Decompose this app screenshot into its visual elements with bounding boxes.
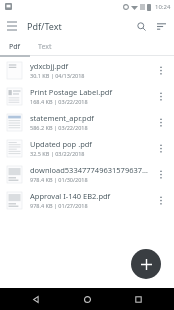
button[interactable]: statement_apr.pdf xyxy=(0,109,174,135)
staticText: Text xyxy=(38,42,52,52)
button[interactable]: ydxcbjj.pdf xyxy=(0,57,174,83)
button[interactable]: More options xyxy=(151,190,171,210)
staticText: ydxcbjj.pdf xyxy=(30,61,69,71)
staticText: Approval I-140 EB2.pdf xyxy=(30,191,111,201)
button[interactable]: Open navigation drawer xyxy=(2,16,22,36)
button[interactable]: Add xyxy=(131,249,161,279)
button[interactable]: Approval I-140 EB2.pdf xyxy=(0,187,174,213)
button[interactable]: download5334777496315796372.pdf xyxy=(0,161,174,187)
button[interactable]: Updated pop .pdf xyxy=(0,135,174,161)
staticText: 30.1 KB | 04/13/2018 xyxy=(30,72,85,79)
staticText: 32.5 KB | 03/22/2018 xyxy=(30,150,85,157)
button[interactable]: Sort xyxy=(151,16,171,36)
button[interactable]: Search xyxy=(131,16,151,36)
staticText: 978.4 KB | 01/30/2018 xyxy=(30,176,88,183)
button[interactable]: Pdf xyxy=(0,38,30,55)
staticText: Pdf/Text xyxy=(27,20,62,32)
button[interactable]: Back xyxy=(21,288,51,310)
button[interactable]: Print Postage Label.pdf xyxy=(0,83,174,109)
staticText: statement_apr.pdf xyxy=(30,113,94,123)
button[interactable]: Text xyxy=(30,38,60,55)
staticText: download5334777496315796372.pdf xyxy=(30,165,151,175)
staticText: 978.4 KB | 01/27/2018 xyxy=(30,202,88,209)
button[interactable]: More options xyxy=(151,60,171,80)
staticText: Updated pop .pdf xyxy=(30,139,92,149)
button[interactable]: More options xyxy=(151,86,171,106)
staticText: 586.2 KB | 03/22/2018 xyxy=(30,124,88,131)
button[interactable]: More options xyxy=(151,112,171,132)
staticText: Print Postage Label.pdf xyxy=(30,87,112,97)
staticText: 10:24 xyxy=(155,3,171,11)
button[interactable]: Home xyxy=(72,288,102,310)
button[interactable]: More options xyxy=(151,164,171,184)
button[interactable]: Recent apps xyxy=(123,288,153,310)
staticText: Pdf xyxy=(9,42,21,52)
button[interactable]: More options xyxy=(151,138,171,158)
staticText: 168.4 KB | 03/22/2018 xyxy=(30,98,88,105)
